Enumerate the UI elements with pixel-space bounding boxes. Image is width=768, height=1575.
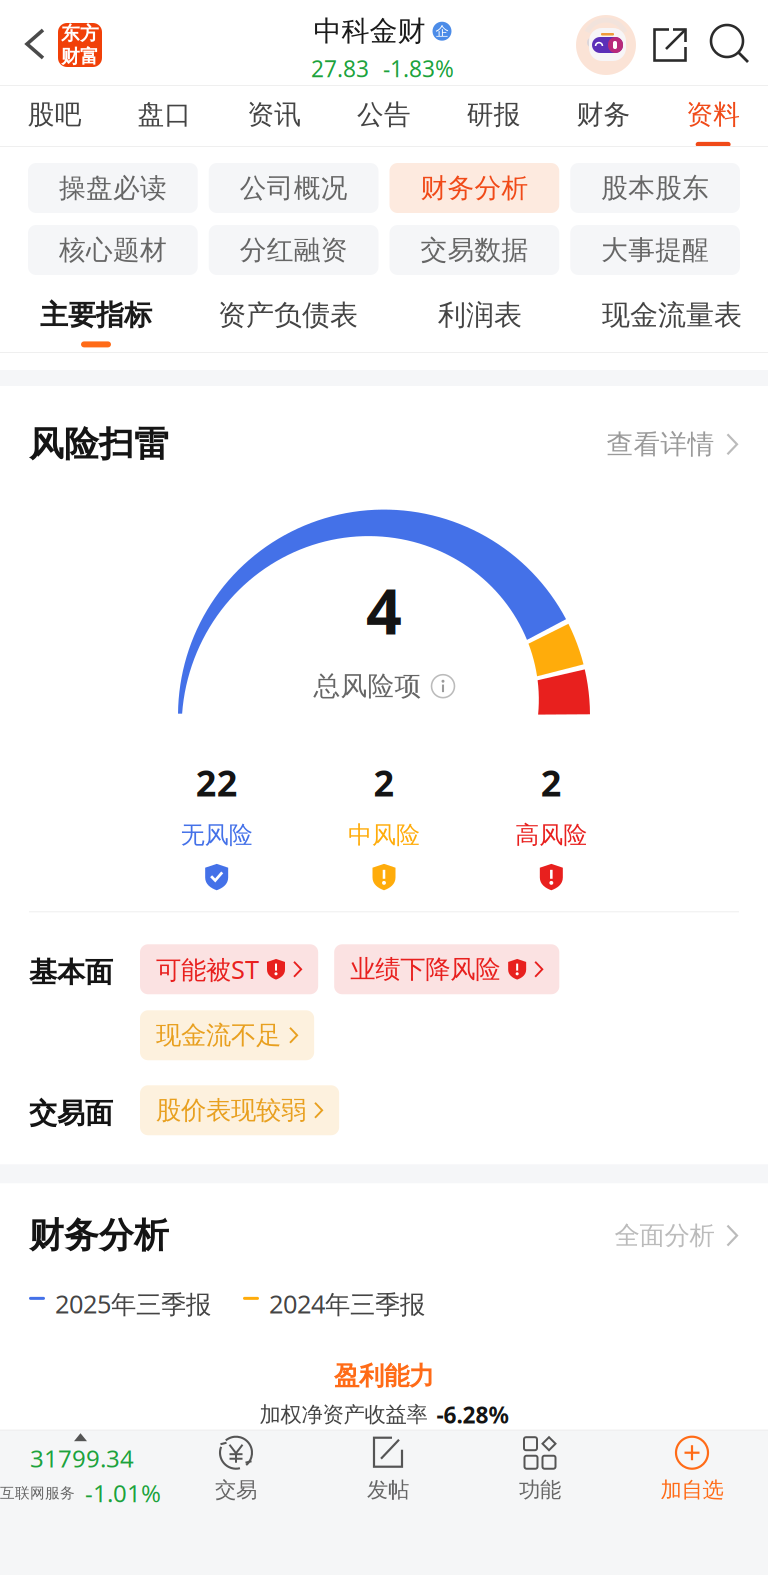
button[interactable]: 31799.34: [0, 1433, 160, 1575]
staticText: -6.28%: [436, 1400, 508, 1430]
staticText: 资产负债表: [218, 298, 358, 332]
staticText: 盘口: [138, 98, 192, 131]
staticText: 中科金财: [313, 14, 425, 48]
staticText: 股价表现较弱: [156, 1095, 306, 1126]
button[interactable]: 现金流量表: [576, 285, 768, 352]
button[interactable]: 分享: [0, 0, 693, 68]
staticText: 无风险: [181, 820, 253, 850]
staticText: -1.83%: [383, 53, 454, 83]
staticText: 查看详情: [606, 428, 714, 461]
staticText: 财务分析: [420, 172, 528, 204]
staticText: 2024年三季报: [269, 1287, 425, 1320]
button[interactable]: 全面分析: [614, 1220, 738, 1251]
button[interactable]: 查看详情: [606, 428, 738, 461]
staticText: 2: [541, 759, 562, 806]
staticText: 公告: [357, 98, 411, 131]
staticText: 2: [373, 759, 394, 806]
staticText: 功能: [519, 1477, 561, 1503]
button[interactable]: 财务: [549, 86, 658, 146]
button[interactable]: 公告: [329, 86, 439, 146]
staticText: 加自选: [660, 1477, 723, 1503]
button[interactable]: 财务分析: [389, 163, 559, 213]
staticText: 企: [435, 23, 448, 39]
button[interactable]: 核心题材: [28, 225, 198, 275]
staticText: 交易: [215, 1477, 257, 1503]
staticText: 交易面: [29, 1096, 113, 1131]
staticText: 2025年三季报: [55, 1287, 211, 1320]
staticText: 操盘必读: [59, 172, 167, 204]
button[interactable]: 返回: [0, 0, 56, 68]
button[interactable]: 加自选: [616, 1431, 768, 1575]
button[interactable]: 发帖: [312, 1431, 464, 1575]
staticText: 现金流量表: [602, 298, 742, 332]
button[interactable]: 现金流不足: [140, 1010, 314, 1060]
staticText: 基本面: [29, 955, 113, 990]
button[interactable]: 资讯: [219, 86, 329, 146]
staticText: 中风险: [348, 820, 420, 850]
staticText: 可能被ST: [156, 952, 259, 986]
button[interactable]: 股吧: [0, 86, 110, 146]
staticText: 分红融资: [240, 234, 348, 266]
staticText: 总风险项: [313, 670, 421, 703]
staticText: 利润表: [438, 298, 522, 332]
staticText: 股吧: [28, 98, 82, 131]
button[interactable]: 分红融资: [209, 225, 379, 275]
staticText: 资讯: [247, 98, 301, 131]
button[interactable]: 研报: [439, 86, 549, 146]
staticText: 核心题材: [59, 234, 167, 266]
staticText: 公司概况: [240, 172, 348, 204]
staticText: 业绩下降风险: [350, 954, 500, 985]
staticText: 资料: [686, 98, 740, 131]
staticText: 研报: [467, 98, 521, 131]
staticText: 交易数据: [420, 234, 528, 266]
button[interactable]: 东方财富: [58, 23, 102, 67]
staticText: 股本股东: [601, 172, 709, 204]
staticText: 31799.34: [30, 1442, 134, 1474]
staticText: 发帖: [367, 1477, 409, 1503]
button[interactable]: 资料: [658, 86, 768, 146]
button[interactable]: 功能: [464, 1431, 616, 1575]
button[interactable]: 交易数据: [389, 225, 559, 275]
button[interactable]: 主要指标: [0, 285, 192, 352]
staticText: 大事提醒: [601, 234, 709, 266]
button[interactable]: 公司概况: [209, 163, 379, 213]
button[interactable]: 可能被ST: [140, 944, 318, 994]
staticText: 东方: [61, 22, 99, 45]
staticText: 财务: [576, 98, 630, 131]
staticText: 财富: [61, 45, 99, 68]
button[interactable]: 搜索: [0, 0, 754, 68]
button[interactable]: AI 助手: [576, 15, 636, 75]
button[interactable]: 盘口: [110, 86, 219, 146]
button[interactable]: 股本股东: [570, 163, 740, 213]
staticText: 加权净资产收益率: [259, 1402, 427, 1428]
staticText: 互联网服务: [0, 1484, 75, 1502]
staticText: 盈利能力: [334, 1360, 434, 1392]
button[interactable]: 资产负债表: [192, 285, 384, 352]
staticText: 4: [366, 569, 402, 652]
button[interactable]: 操盘必读: [28, 163, 198, 213]
staticText: 27.83: [311, 53, 369, 83]
button[interactable]: 交易: [160, 1431, 312, 1575]
staticText: 财务分析: [29, 1214, 169, 1257]
staticText: 22: [196, 759, 238, 806]
staticText: 主要指标: [40, 298, 152, 332]
button[interactable]: 大事提醒: [570, 225, 740, 275]
button[interactable]: 股价表现较弱: [140, 1085, 339, 1135]
button[interactable]: 业绩下降风险: [334, 944, 559, 994]
staticText: 全面分析: [614, 1220, 714, 1251]
staticText: 现金流不足: [156, 1020, 281, 1051]
button[interactable]: 利润表: [384, 285, 576, 352]
staticText: 高风险: [515, 820, 587, 850]
staticText: 风险扫雷: [29, 423, 169, 466]
staticText: -1.01%: [85, 1477, 161, 1509]
